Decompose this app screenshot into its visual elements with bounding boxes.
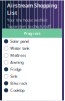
button[interactable]: Awning bbox=[2, 59, 62, 66]
staticText: Mattress bbox=[10, 53, 26, 58]
staticText: Tap an item to check it off bbox=[7, 23, 51, 29]
staticText: Cooktop bbox=[10, 88, 24, 93]
staticText: Solar panel bbox=[10, 39, 29, 44]
button[interactable]: Solar panel bbox=[2, 38, 62, 45]
button[interactable]: Fridge bbox=[2, 66, 62, 73]
staticText: Airstream Shopping List bbox=[7, 2, 57, 16]
staticText: Water tank bbox=[10, 46, 29, 51]
staticText: Your tiny house wishlist bbox=[7, 17, 47, 22]
button[interactable]: Mattress bbox=[2, 52, 62, 59]
staticText: Bike rack bbox=[10, 81, 27, 86]
staticText: Fridge bbox=[10, 67, 21, 72]
button[interactable]: Bike rack bbox=[2, 80, 62, 87]
button[interactable]: Sink bbox=[2, 73, 62, 80]
button[interactable]: Cooktop bbox=[2, 87, 62, 94]
staticText: Awning bbox=[10, 60, 23, 65]
staticText: Sink bbox=[10, 74, 17, 79]
staticText: Progress bbox=[23, 31, 40, 36]
button[interactable]: Water tank bbox=[2, 45, 62, 52]
